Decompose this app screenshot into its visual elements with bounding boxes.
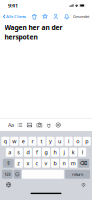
staticText: Wagen her an der [4,23,62,32]
button[interactable]: z [15,159,23,168]
staticText: s [17,149,20,156]
button[interactable]: Notifications [61,11,72,21]
button[interactable]: Text format [7,120,15,129]
button[interactable]: r [28,137,36,146]
button[interactable]: t [37,137,45,146]
button[interactable]: Dictate [81,182,86,187]
staticText: l [82,149,83,156]
button[interactable]: s [15,148,23,157]
button[interactable]: i [65,137,73,146]
staticText: y [49,138,52,145]
button[interactable]: g [42,148,50,157]
staticText: Aa [8,121,14,129]
button[interactable]: Camera [37,122,42,127]
button[interactable]: Gesendet [73,14,90,19]
staticText: herspoten [4,32,37,41]
button[interactable]: k [69,148,77,157]
staticText: f [36,149,38,156]
staticText: v [44,160,47,167]
button[interactable]: 123 [2,170,12,179]
staticText: p [85,138,88,145]
staticText: x [26,160,29,167]
staticText: h [53,149,56,156]
button[interactable]: Emoji [14,170,21,179]
button[interactable]: b [51,159,59,168]
staticText: o [76,138,79,145]
staticText: z [17,160,20,167]
staticText: i [68,138,69,145]
button[interactable]: c [33,159,41,168]
button[interactable]: Delete [29,11,40,21]
button[interactable]: j [60,148,68,157]
staticText: 9:41 [8,2,18,9]
staticText: Alle Clients [6,14,26,19]
staticText: 123 [4,172,10,177]
button[interactable]: Attach [47,122,51,128]
staticText: b [53,160,56,167]
staticText: r [31,138,33,145]
button[interactable]: Switch keyboard [6,182,11,187]
staticText: Gesendet [73,14,89,19]
button[interactable]: List [17,122,22,127]
button[interactable]: y [46,137,54,146]
staticText: t [40,138,42,145]
button[interactable]: d [24,148,32,157]
button[interactable]: Contact [50,11,61,21]
button[interactable]: Photo [27,122,32,127]
staticText: ⇧ [6,160,10,166]
button[interactable]: x [24,159,32,168]
staticText: m [71,160,76,167]
button[interactable]: return [65,170,90,179]
button[interactable]: e [19,137,27,146]
staticText: n [63,160,66,167]
button[interactable]: m [69,159,77,168]
button[interactable]: ⌫ [78,159,89,168]
button[interactable]: Scan [56,122,61,128]
button[interactable]: w [10,137,18,146]
button[interactable]: l [78,148,86,157]
staticText: u [58,138,61,145]
button[interactable]: f [33,148,41,157]
button[interactable]: ⇧ [3,159,14,168]
staticText: return [72,172,83,177]
button[interactable]: q [1,137,9,146]
button[interactable]: Alle Clients [1,11,27,21]
staticText: d [26,149,29,156]
button[interactable]: h [51,148,59,157]
staticText: g [44,149,47,156]
button[interactable]: n [60,159,68,168]
staticText: j [64,149,65,156]
button[interactable]: p [83,137,91,146]
staticText: ⌫ [80,160,88,166]
staticText: q [4,138,7,145]
staticText: w [12,138,16,145]
staticText: k [72,149,75,156]
button[interactable]: a [6,148,14,157]
button[interactable]: v [42,159,50,168]
staticText: c [35,160,38,167]
staticText: e [22,138,25,145]
button[interactable]: u [56,137,64,146]
button[interactable] [22,170,64,179]
button[interactable]: o [74,137,82,146]
button[interactable]: Favourite [40,11,50,21]
staticText: a [8,149,11,156]
